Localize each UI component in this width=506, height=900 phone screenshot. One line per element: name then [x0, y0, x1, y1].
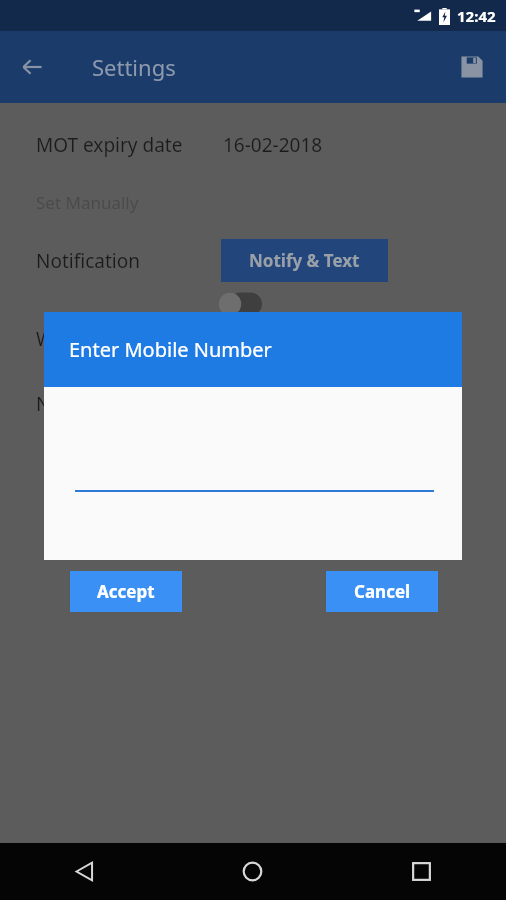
staticText: N [36, 391, 51, 417]
staticText: Notify & Text [249, 249, 360, 272]
staticText: Cancel [354, 580, 411, 603]
staticText: Notification [36, 248, 140, 274]
staticText: Settings [92, 52, 176, 82]
button[interactable]: Set Manually toggle [218, 290, 268, 318]
button[interactable]: Save [448, 43, 496, 91]
staticText: W [36, 326, 54, 352]
button[interactable]: Back [0, 843, 168, 900]
staticText: 12:42 [457, 6, 496, 26]
staticText: Enter Mobile Number [69, 336, 272, 363]
staticText: 16-02-2018 [223, 132, 323, 158]
button[interactable]: Mobile number input [75, 458, 434, 492]
button[interactable]: Recent apps [337, 843, 506, 900]
button[interactable]: Accept [70, 571, 182, 612]
button[interactable]: Home [168, 843, 337, 900]
staticText: Set Manually [36, 191, 139, 214]
staticText: Accept [97, 580, 155, 603]
button[interactable]: Cancel [326, 571, 438, 612]
button[interactable]: Back [8, 43, 56, 91]
staticText: MOT expiry date [36, 132, 183, 158]
button[interactable]: Notify & Text [221, 239, 388, 282]
